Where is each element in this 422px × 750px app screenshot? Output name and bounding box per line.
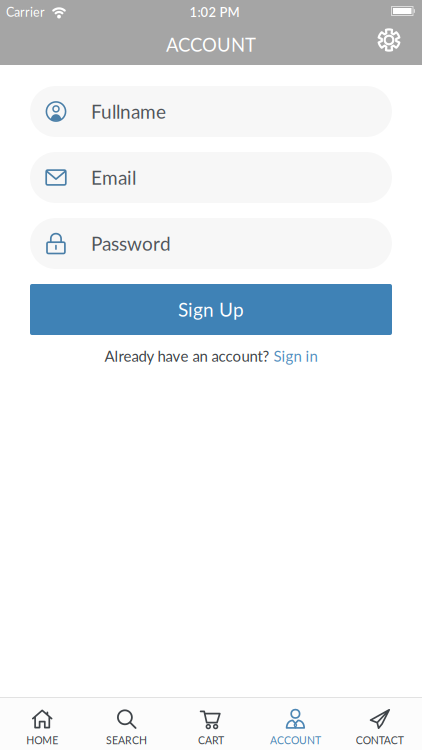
staticText: CONTACT <box>356 734 404 747</box>
button[interactable]: Settings <box>377 28 400 51</box>
staticText: Email <box>91 166 136 189</box>
button[interactable]: Password <box>30 218 392 269</box>
staticText: Sign Up <box>178 298 244 321</box>
button[interactable]: Sign in <box>273 347 317 365</box>
staticText: Password <box>91 232 171 255</box>
staticText: ACCOUNT <box>270 734 321 747</box>
button[interactable]: Sign Up <box>30 284 392 335</box>
button[interactable]: HOME <box>0 698 84 750</box>
staticText: HOME <box>26 734 58 747</box>
button[interactable]: CART <box>169 698 253 750</box>
staticText: Sign in <box>273 347 317 365</box>
button[interactable]: SEARCH <box>84 698 169 750</box>
staticText: ACCOUNT <box>166 33 256 56</box>
staticText: Fullname <box>91 100 166 123</box>
staticText: Already have an account? <box>104 347 269 365</box>
staticText: SEARCH <box>106 734 147 747</box>
button[interactable]: CONTACT <box>338 698 422 750</box>
button[interactable]: Email <box>30 152 392 203</box>
button[interactable]: ACCOUNT <box>253 698 338 750</box>
button[interactable]: Fullname <box>30 86 392 137</box>
staticText: 1:02 PM <box>189 4 239 20</box>
staticText: Carrier <box>6 4 45 19</box>
staticText: CART <box>198 734 224 747</box>
